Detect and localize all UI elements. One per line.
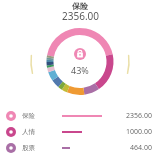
staticText: 股票 xyxy=(22,144,35,152)
staticText: 保险 xyxy=(72,1,88,11)
staticText: 保险 xyxy=(22,112,35,120)
staticText: 43% xyxy=(71,64,89,76)
staticText: 464.00 xyxy=(130,143,152,153)
staticText: 1000.00 xyxy=(126,127,152,137)
staticText: 人情 xyxy=(22,128,35,136)
button[interactable]: 股票 xyxy=(0,140,160,156)
button[interactable]: 保险 xyxy=(0,108,160,124)
staticText: 2356.00 xyxy=(62,9,99,23)
staticText: 2356.00 xyxy=(126,111,152,121)
other: Insurance category xyxy=(74,48,86,60)
button[interactable]: 人情 xyxy=(0,124,160,140)
